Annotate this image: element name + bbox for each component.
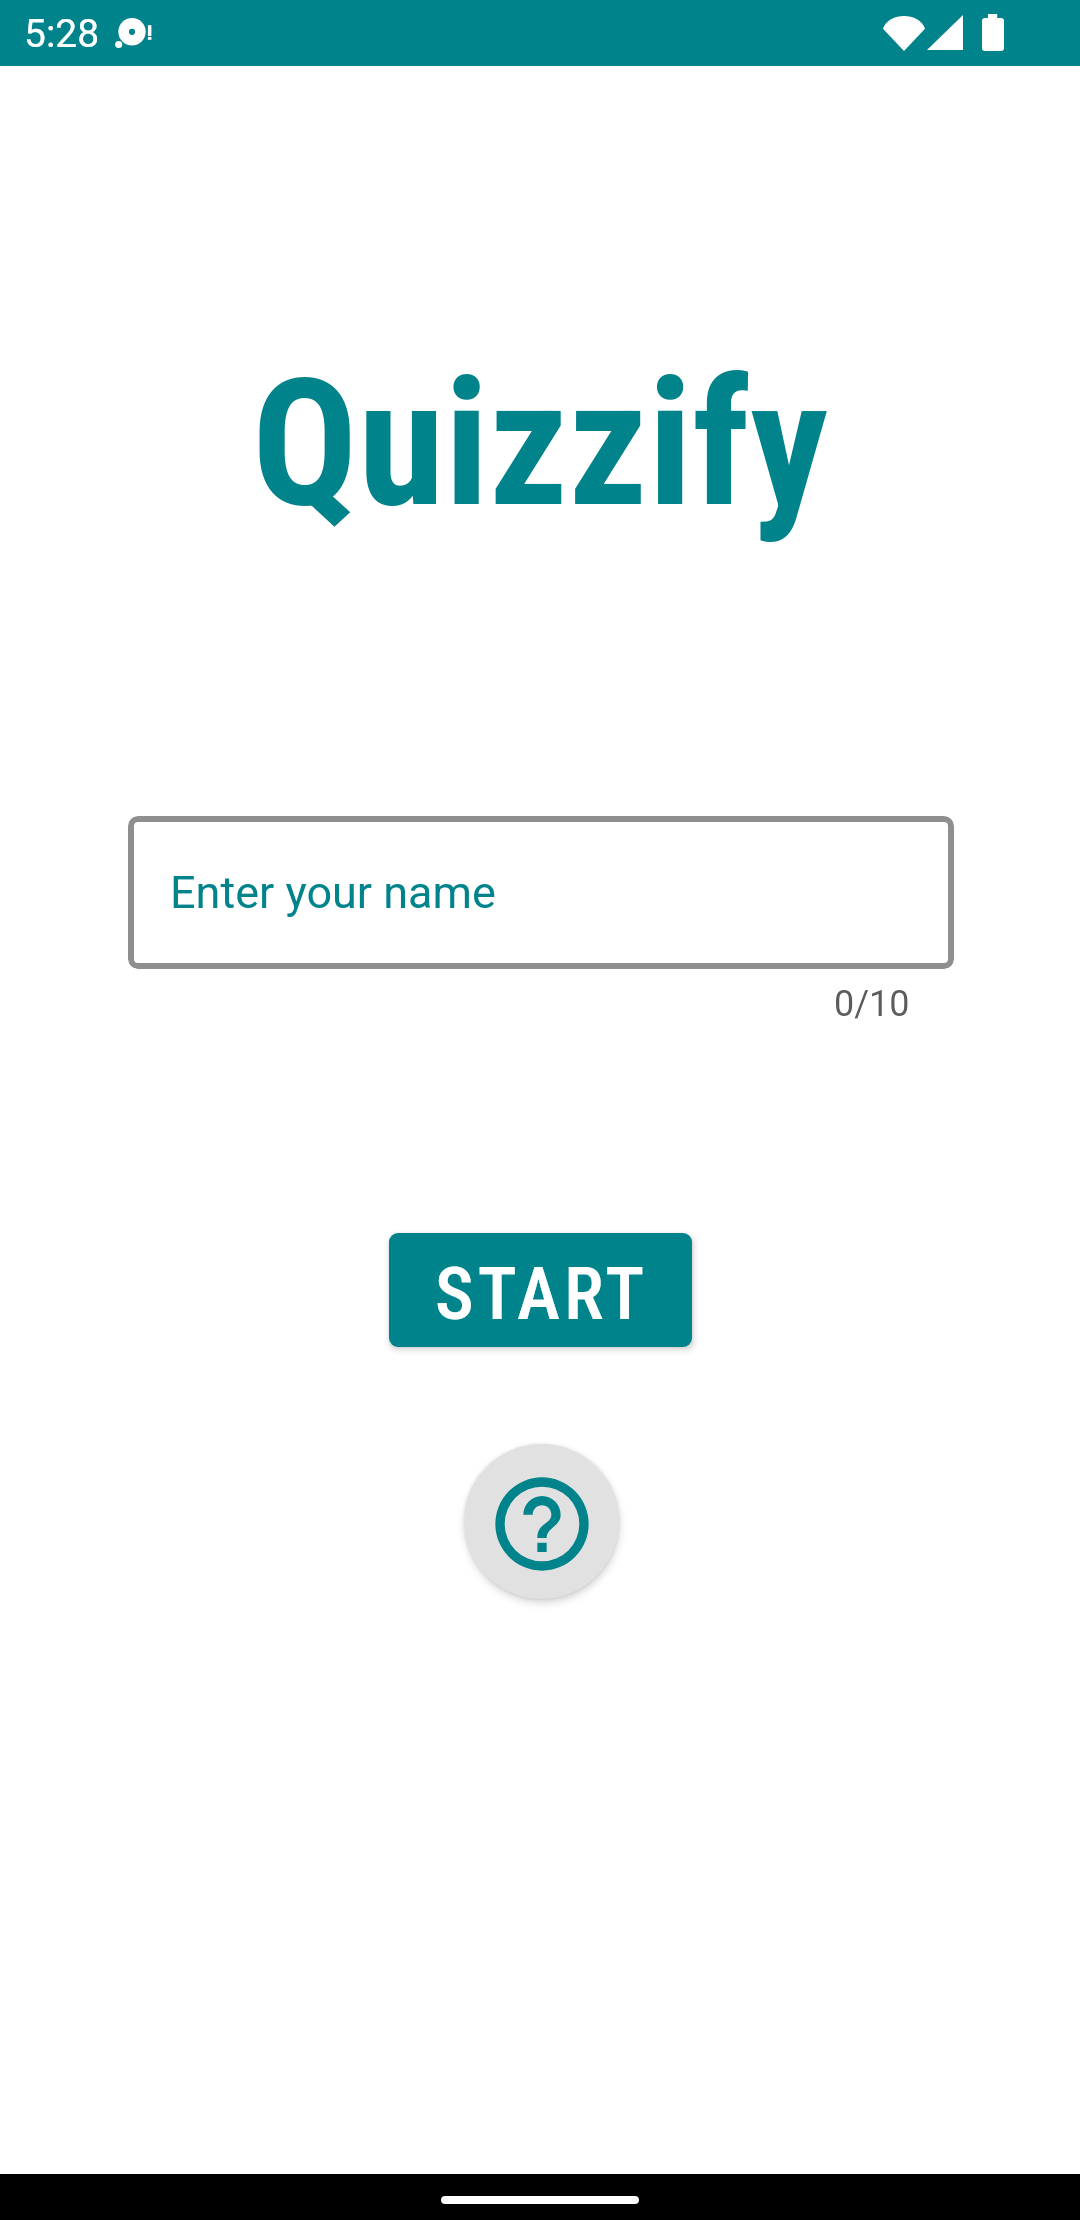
staticText: START [435,1251,649,1337]
button[interactable]: Help [464,1444,619,1599]
staticText: 0/10 [834,983,910,1025]
button[interactable]: Enter your name [128,816,954,969]
button[interactable]: START [389,1233,692,1347]
staticText: 5:28 [24,11,100,57]
staticText: Quizzify [0,341,1080,547]
staticText: Enter your name [170,866,496,919]
